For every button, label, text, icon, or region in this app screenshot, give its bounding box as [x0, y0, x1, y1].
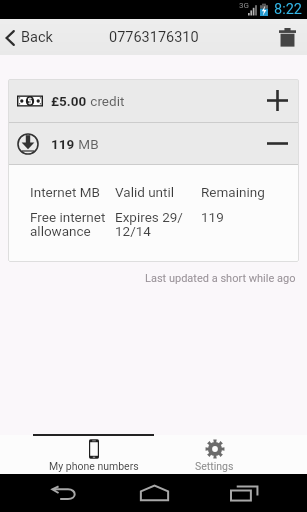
button[interactable]: Expand: [256, 79, 299, 122]
button[interactable]: 119: [8, 123, 299, 164]
button[interactable]: Back: [0, 29, 92, 46]
staticText: MB: [75, 136, 99, 152]
staticText: Settings: [195, 460, 234, 472]
staticText: 07763176310: [109, 29, 199, 46]
staticText: Internet MB: [30, 184, 115, 200]
staticText: £5.00: [51, 93, 87, 109]
staticText: 119: [51, 136, 75, 152]
button[interactable]: Delete: [268, 22, 307, 53]
staticText: 3G: [239, 1, 249, 10]
staticText: Back: [21, 29, 53, 46]
staticText: credit: [87, 93, 125, 109]
staticText: Valid until: [115, 184, 201, 200]
staticText: Free internet allowance: [30, 209, 115, 240]
button[interactable]: Home: [130, 474, 178, 512]
staticText: Expires 29/ 12/14: [115, 209, 201, 240]
button[interactable]: Recent apps: [220, 474, 268, 512]
staticText: 119: [201, 209, 224, 225]
button[interactable]: £5.00: [8, 79, 299, 122]
staticText: My phone numbers: [49, 460, 139, 472]
staticText: Remaining: [201, 184, 265, 200]
staticText: Last updated a short while ago: [145, 272, 296, 285]
button[interactable]: Settings: [154, 435, 275, 474]
button[interactable]: Back: [40, 474, 88, 512]
button[interactable]: Collapse: [256, 123, 299, 164]
button[interactable]: My phone numbers: [33, 435, 154, 474]
staticText: 8:22: [274, 1, 302, 18]
